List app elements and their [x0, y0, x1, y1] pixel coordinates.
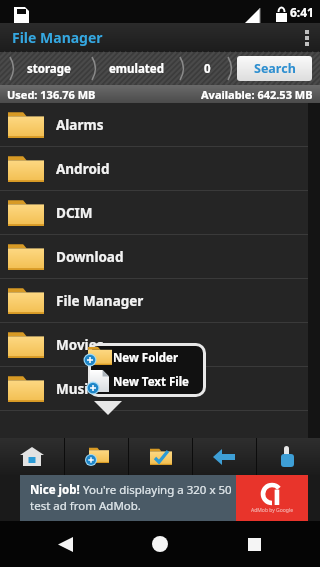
staticText: 6:41	[290, 4, 314, 20]
staticText: Music	[56, 380, 96, 398]
button[interactable]: More options	[294, 23, 320, 52]
button[interactable]: Recent apps	[207, 521, 302, 567]
button[interactable]: Touch	[257, 438, 320, 475]
button[interactable]: Home	[112, 521, 207, 567]
button[interactable]: Movies	[0, 323, 320, 367]
button[interactable]: Back	[18, 521, 112, 567]
button[interactable]: Back	[193, 438, 256, 475]
button[interactable]: New Text File	[91, 370, 203, 394]
staticText: Available: 642.53 MB	[201, 87, 313, 102]
staticText: test ad from AdMob.	[30, 498, 141, 514]
button[interactable]: storage	[14, 56, 84, 82]
staticText: New Text File	[113, 374, 189, 390]
staticText: AdMob by Google	[251, 507, 293, 514]
button[interactable]: 0	[191, 56, 224, 82]
staticText: Download	[56, 248, 124, 266]
staticText: New Folder	[113, 350, 179, 366]
button[interactable]: Select folder	[129, 438, 192, 475]
button[interactable]: emulated	[96, 56, 177, 82]
button[interactable]: Alarms	[0, 103, 320, 147]
staticText: Search	[254, 60, 296, 77]
staticText: storage	[27, 61, 71, 77]
button[interactable]: AdMob by Google	[236, 475, 308, 521]
staticText: Movies	[56, 336, 104, 354]
staticText: Android	[56, 160, 110, 178]
staticText: Alarms	[56, 116, 104, 134]
button[interactable]: File Manager	[0, 279, 320, 323]
staticText: DCIM	[56, 204, 93, 222]
staticText: File Manager	[12, 28, 103, 47]
button[interactable]: Home	[0, 438, 64, 475]
staticText: File Manager	[56, 292, 144, 310]
button[interactable]: Nice job!	[20, 475, 236, 521]
staticText: Nice job!	[30, 482, 83, 498]
button[interactable]: Music	[0, 367, 320, 411]
button[interactable]: DCIM	[0, 191, 320, 235]
button[interactable]: New Folder	[91, 346, 203, 370]
button[interactable]: Android	[0, 147, 320, 191]
staticText: 0	[204, 61, 211, 77]
staticText: Used: 136.76 MB	[7, 87, 96, 102]
staticText: You're displaying a 320 x 50	[83, 482, 232, 498]
staticText: emulated	[109, 61, 164, 77]
button[interactable]: New folder	[65, 438, 128, 475]
button[interactable]: Download	[0, 235, 320, 279]
button[interactable]: Search	[237, 56, 312, 81]
